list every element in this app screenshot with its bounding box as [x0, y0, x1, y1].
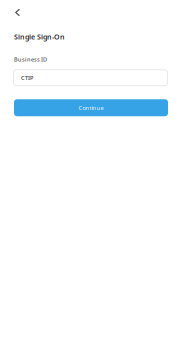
button[interactable]: Continue	[14, 99, 168, 116]
button[interactable]: Back	[9, 5, 27, 21]
button[interactable]: Business ID	[13, 69, 168, 86]
staticText: Single Sign-On	[14, 32, 65, 42]
staticText: CTIP	[21, 74, 33, 81]
staticText: Business ID	[14, 56, 47, 63]
staticText: Continue	[78, 104, 103, 112]
